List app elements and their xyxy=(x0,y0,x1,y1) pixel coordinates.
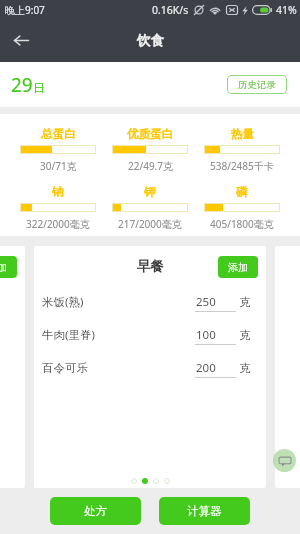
staticText: 538/2485千卡 xyxy=(210,159,274,173)
staticText: 41% xyxy=(276,3,297,17)
staticText: 添加 xyxy=(228,261,248,274)
staticText: 100 xyxy=(196,327,216,343)
staticText: 250 xyxy=(196,294,216,310)
staticText: 钠 xyxy=(52,185,64,199)
button[interactable]: 处方 xyxy=(50,497,141,525)
staticText: 22/49.7克 xyxy=(128,159,173,173)
staticText: 30/71克 xyxy=(40,159,77,173)
staticText: 29 xyxy=(11,72,33,98)
button[interactable]: 米饭(熟) xyxy=(42,285,258,318)
staticText: 克 xyxy=(239,328,251,342)
staticText: 200 xyxy=(196,360,216,376)
staticText: 米饭(熟) xyxy=(42,294,84,310)
staticText: 历史记录 xyxy=(238,79,276,91)
staticText: 克 xyxy=(239,295,251,309)
staticText: 计算器 xyxy=(187,504,222,518)
staticText: 处方 xyxy=(84,504,107,518)
staticText: 钾 xyxy=(144,185,156,199)
staticText: 优质蛋白 xyxy=(127,127,173,141)
staticText: 添加 xyxy=(0,261,7,274)
button[interactable]: 历史记录 xyxy=(227,75,287,94)
staticText: 热量 xyxy=(231,127,254,141)
staticText: 日 xyxy=(33,80,45,95)
staticText: 克 xyxy=(239,361,251,375)
staticText: 总蛋白 xyxy=(41,127,76,141)
button[interactable]: 百令可乐 xyxy=(42,351,258,384)
staticText: 322/2000毫克 xyxy=(26,217,90,231)
staticText: 早餐 xyxy=(137,258,164,275)
button[interactable]: 计算器 xyxy=(159,497,250,525)
button[interactable]: Back xyxy=(0,19,43,62)
staticText: 0.16K/s xyxy=(152,3,189,17)
staticText: 晚上9:07 xyxy=(5,3,45,17)
button[interactable]: Feedback xyxy=(273,449,296,472)
button[interactable]: 牛肉(里脊) xyxy=(42,318,258,351)
staticText: 饮食 xyxy=(137,32,164,49)
staticText: 牛肉(里脊) xyxy=(42,327,95,343)
staticText: 217/2000毫克 xyxy=(118,217,182,231)
staticText: 405/1800毫克 xyxy=(210,217,274,231)
staticText: 百令可乐 xyxy=(42,361,88,375)
staticText: 磷 xyxy=(236,185,248,199)
button[interactable]: 添加 xyxy=(218,256,258,278)
button[interactable]: 添加 xyxy=(0,256,17,278)
